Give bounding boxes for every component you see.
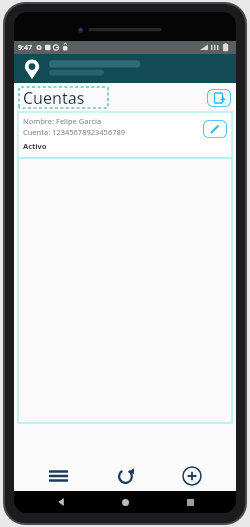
other: Logo (20, 57, 44, 81)
button[interactable]: Actualizar (102, 461, 148, 491)
button[interactable]: Editar (203, 120, 227, 138)
button[interactable]: Atrás (43, 491, 79, 513)
staticText: Activo (23, 141, 47, 151)
button[interactable]: Menú (35, 461, 81, 491)
staticText: Cuenta: 12345678923456789 (23, 127, 126, 137)
staticText: 9:47 (18, 43, 32, 53)
button[interactable]: Inicio (107, 491, 143, 513)
staticText: Nombre: Felipe Garcia (23, 116, 102, 126)
button[interactable]: Agregar cuenta (207, 89, 231, 107)
button[interactable]: Recientes (172, 491, 208, 513)
staticText: Cuentas (23, 87, 85, 108)
button[interactable]: Agregar (169, 461, 215, 491)
button[interactable]: Cuentas (19, 87, 108, 108)
button[interactable]: Nombre: Felipe Garcia (18, 112, 232, 158)
